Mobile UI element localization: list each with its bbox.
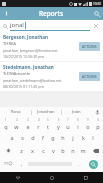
button[interactable]: Search [83, 157, 103, 171]
button[interactable]: Back [0, 172, 35, 183]
button[interactable]: ACTIONS [79, 72, 100, 81]
staticText: k [82, 134, 85, 141]
staticText: TrDMAmanthi [3, 71, 31, 77]
button[interactable]: Voice input [91, 107, 103, 117]
button[interactable]: v [48, 144, 58, 157]
button[interactable]: Space [26, 157, 74, 171]
button[interactable]: 7 [63, 117, 73, 131]
staticText: g [51, 134, 55, 141]
button[interactable]: Rosa [0, 107, 31, 117]
button[interactable]: 8 [73, 117, 83, 131]
staticText: s [21, 134, 24, 141]
staticText: 1 [5, 118, 7, 122]
staticText: o [86, 123, 90, 130]
staticText: l [92, 134, 94, 141]
button[interactable]: 1 [0, 117, 11, 131]
staticText: Jonathan [37, 109, 55, 115]
staticText: b [61, 147, 65, 154]
staticText: z [20, 147, 23, 154]
staticText: Joan [72, 109, 81, 115]
button[interactable]: ?1☺ [0, 157, 17, 171]
button[interactable]: Shift [0, 144, 16, 157]
button[interactable]: 4 [33, 117, 43, 131]
staticText: jonathan_bergeson@frontier.net [3, 48, 58, 53]
staticText: 6 [58, 118, 60, 122]
button[interactable]: Recents [69, 172, 103, 183]
button[interactable]: a [6, 131, 17, 144]
staticText: ACTIONS [82, 44, 97, 49]
staticText: j [72, 134, 74, 141]
button[interactable]: Backspace [88, 144, 103, 157]
staticText: n [71, 147, 75, 154]
button[interactable]: Navigate up [0, 7, 13, 20]
button[interactable]: . [74, 157, 83, 171]
button[interactable]: x [27, 144, 38, 157]
button[interactable]: Home [35, 172, 69, 183]
staticText: Reports [39, 9, 64, 18]
staticText: i [77, 123, 79, 130]
staticText: x [31, 147, 34, 154]
staticText: 08/30/2015 01:11:20 pm [3, 84, 44, 89]
button[interactable]: ACTIONS [79, 42, 100, 51]
staticText: 4 [38, 118, 40, 122]
button[interactable]: 3 [22, 117, 33, 131]
button[interactable]: Clear search [92, 22, 100, 30]
button[interactable]: z [16, 144, 27, 157]
staticText: jonal [10, 21, 24, 29]
staticText: e [26, 123, 30, 130]
button[interactable]: f [38, 131, 48, 144]
button[interactable]: Search [90, 7, 103, 20]
button[interactable]: c [38, 144, 48, 157]
staticText: , [21, 161, 23, 167]
button[interactable]: d [28, 131, 38, 144]
button[interactable]: Joan [61, 107, 91, 117]
button[interactable]: Jonathan [31, 107, 61, 117]
staticText: Bergeson, Jonathan [3, 34, 48, 40]
staticText: c [42, 147, 45, 154]
staticText: m [80, 147, 86, 154]
button[interactable]: Bergeson, Jonathan [0, 32, 103, 61]
staticText: d [31, 134, 35, 141]
button[interactable]: 2 [11, 117, 22, 131]
staticText: 3 [27, 118, 29, 122]
staticText: 9 [87, 118, 89, 122]
staticText: h [61, 134, 65, 141]
staticText: r [37, 123, 40, 130]
staticText: Stedelmann, Jonathan [3, 64, 54, 70]
staticText: Rosa [11, 109, 21, 115]
staticText: 8 [77, 118, 79, 122]
button[interactable]: 5 [43, 117, 53, 131]
button[interactable]: 9 [83, 117, 93, 131]
staticText: THREA [3, 41, 17, 47]
staticText: 7 [67, 118, 69, 122]
staticText: p [96, 123, 100, 130]
button[interactable]: Stedelmann, Jonathan [0, 62, 103, 91]
button[interactable]: k [78, 131, 88, 144]
button[interactable]: g [48, 131, 58, 144]
button[interactable]: b [58, 144, 68, 157]
staticText: t [47, 123, 49, 130]
staticText: . [78, 161, 80, 167]
button[interactable]: h [58, 131, 68, 144]
staticText: v [52, 147, 55, 154]
button[interactable]: m [78, 144, 88, 157]
staticText: y [57, 123, 60, 130]
button[interactable]: 6 [53, 117, 63, 131]
staticText: 10:30 [93, 2, 101, 6]
staticText: 0 [97, 118, 99, 122]
staticText: jonathan_stedelmann@bodmn.net [3, 78, 62, 83]
staticText: ACTIONS [82, 74, 97, 79]
staticText: q [4, 123, 8, 130]
staticText: w [14, 123, 19, 130]
button[interactable]: n [68, 144, 78, 157]
staticText: 2 [16, 118, 18, 122]
staticText: 10/07/2015 12:56:20 pm [3, 54, 44, 59]
button[interactable]: l [88, 131, 98, 144]
staticText: a [10, 134, 14, 141]
button[interactable]: 0 [93, 117, 103, 131]
staticText: 5 [47, 118, 49, 122]
button[interactable]: s [17, 131, 28, 144]
button[interactable]: , [17, 157, 26, 171]
staticText: u [66, 123, 70, 130]
button[interactable]: j [68, 131, 78, 144]
